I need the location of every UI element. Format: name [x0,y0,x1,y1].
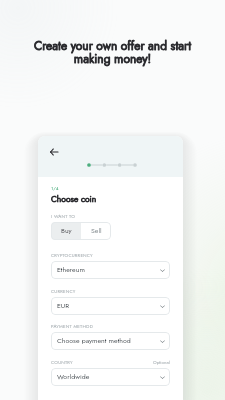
staticText: PAYMENT METHOD [51,323,94,330]
staticText: CRYPTOCURRENCY [51,252,93,259]
staticText: 1/4 [51,185,59,192]
staticText: Optional [153,359,170,366]
button[interactable]: EUR [51,297,170,315]
staticText: Choose coin [51,193,97,205]
button[interactable]: Choose payment method [51,332,170,350]
staticText: Create your own offer and start making m… [8,37,217,68]
button[interactable]: Buy [51,222,81,240]
staticText: COUNTRY [51,359,73,366]
button[interactable]: Ethereum [51,261,170,279]
button[interactable]: Worldwide [51,368,170,386]
staticText: Worldwide [57,372,90,382]
button[interactable]: Sell [81,222,111,240]
staticText: Buy [61,226,72,236]
staticText: I WANT TO [51,213,76,220]
staticText: Sell [91,226,102,236]
staticText: EUR [57,301,70,311]
staticText: Ethereum [57,265,85,275]
staticText: Create your own offer and start making m… [8,37,217,68]
staticText: CURRENCY [51,288,76,295]
staticText: Choose payment method [57,336,131,346]
button[interactable]: Back [45,143,62,160]
staticText: Choose coin [51,193,97,205]
